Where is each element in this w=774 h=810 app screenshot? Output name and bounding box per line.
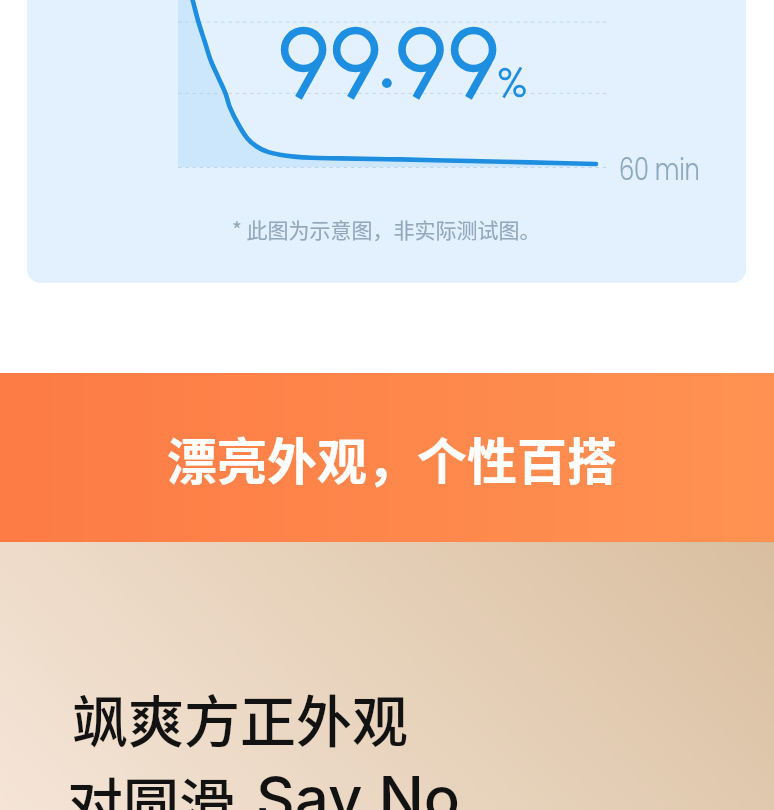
staticText: 漂亮外观，个性百搭: [167, 422, 617, 494]
button[interactable]: 60 min: [27, 0, 746, 283]
staticText: 60 min: [619, 147, 700, 191]
staticText: Say No: [256, 762, 461, 810]
staticText: * 此图为示意图，非实际测试图。: [232, 214, 541, 244]
staticText: 飒爽方正外观: [72, 677, 408, 758]
staticText: 对圆滑: [67, 760, 248, 810]
